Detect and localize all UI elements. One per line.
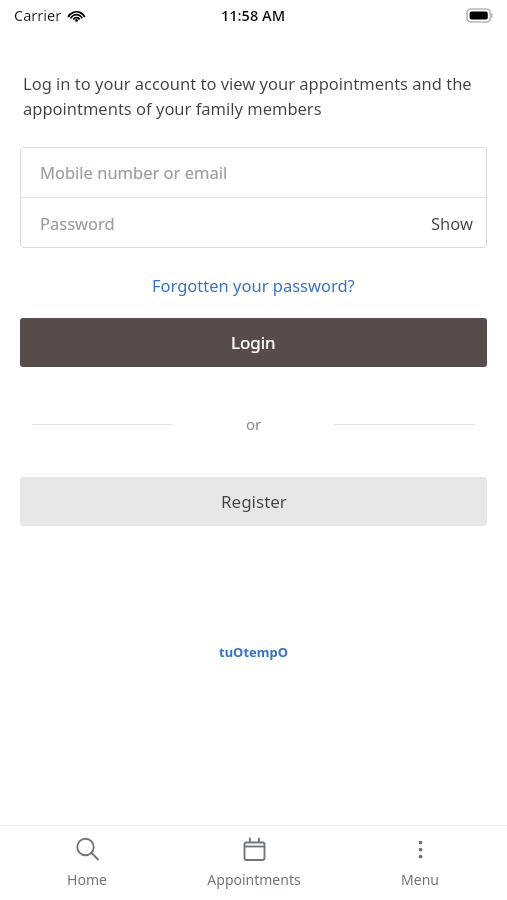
button[interactable]: Mobile number or email (20, 147, 487, 197)
button[interactable]: Login (20, 318, 487, 367)
staticText: Log in to your account to view your appo… (23, 72, 477, 120)
staticText: 11:58 AM (221, 5, 286, 25)
button[interactable]: Register (20, 477, 487, 526)
staticText: Login (231, 331, 276, 354)
button[interactable]: Password (20, 198, 487, 248)
staticText: Menu (401, 870, 439, 889)
staticText: Password (40, 212, 431, 234)
staticText: Mobile number or email (40, 161, 228, 183)
staticText: Home (67, 870, 107, 889)
staticText: Register (221, 490, 287, 513)
button[interactable]: Appointments (174, 831, 334, 895)
staticText: Carrier (14, 5, 62, 25)
button[interactable]: Show (431, 212, 473, 234)
staticText: tuOtempO (219, 643, 288, 661)
staticText: Show (431, 212, 473, 234)
button[interactable]: Forgotten your password? (142, 270, 365, 300)
staticText: Forgotten your password? (152, 274, 355, 296)
staticText: or (246, 414, 262, 434)
button[interactable]: Menu (340, 831, 500, 895)
button[interactable]: Home (7, 831, 167, 895)
staticText: Appointments (207, 870, 301, 889)
